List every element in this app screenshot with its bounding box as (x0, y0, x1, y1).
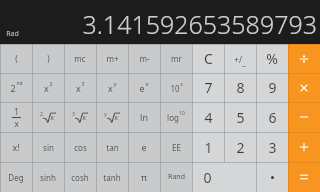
staticText: 9 (268, 78, 277, 97)
staticText: y (104, 111, 107, 118)
staticText: m- (139, 53, 150, 64)
button[interactable]: 2 (224, 132, 256, 162)
staticText: 10 (179, 110, 185, 117)
button[interactable]: y (96, 102, 128, 132)
staticText: x (44, 82, 49, 94)
button[interactable]: tan (96, 132, 128, 162)
button[interactable]: 3 (256, 132, 288, 162)
button[interactable]: e (128, 73, 160, 102)
staticText: cosh (71, 172, 89, 183)
staticText: sin (43, 142, 54, 153)
button[interactable]: sin (32, 132, 64, 162)
button[interactable]: m- (128, 44, 160, 73)
staticText: x! (12, 141, 20, 153)
staticText: sinh (40, 172, 56, 183)
staticText: 3.141592653589793 (82, 7, 317, 41)
staticText: y (113, 80, 117, 88)
button[interactable]: 2 (32, 102, 64, 132)
staticText: Deg (8, 172, 24, 183)
button[interactable]: Equals (288, 162, 320, 192)
button[interactable]: 1 (0, 102, 32, 132)
button[interactable]: ) (32, 44, 64, 73)
staticText: 8 (236, 78, 245, 97)
staticText: 1 (204, 138, 213, 157)
staticText: ( (15, 53, 18, 64)
button[interactable]: cosh (64, 162, 96, 192)
staticText: 2 (236, 138, 245, 157)
staticText: 2 (49, 80, 53, 88)
button[interactable]: mc (64, 44, 96, 73)
staticText: 3 (81, 80, 85, 88)
staticText: Rand (168, 172, 185, 182)
staticText: π (141, 171, 147, 183)
staticText: 0 (203, 168, 212, 187)
button[interactable]: 9 (256, 73, 288, 102)
button[interactable]: ln (128, 102, 160, 132)
button[interactable]: Subtract (288, 102, 320, 132)
staticText: C (204, 49, 213, 68)
button[interactable]: Decimal point (256, 162, 288, 192)
button[interactable]: 0 (192, 162, 256, 192)
button[interactable]: Multiply (288, 73, 320, 102)
staticText: x (114, 113, 118, 123)
staticText: nd (16, 80, 23, 87)
button[interactable]: 5 (224, 102, 256, 132)
staticText: mc (74, 53, 86, 64)
button[interactable]: Add (288, 132, 320, 162)
staticText: 3 (72, 111, 75, 118)
staticText: ) (47, 53, 50, 64)
button[interactable]: Divide (288, 44, 320, 73)
button[interactable]: C (192, 44, 224, 73)
staticText: x (145, 80, 149, 88)
button[interactable]: 3 (64, 102, 96, 132)
button[interactable]: 4 (192, 102, 224, 132)
button[interactable]: m+ (96, 44, 128, 73)
button[interactable]: + (224, 44, 256, 73)
button[interactable]: tanh (96, 162, 128, 192)
staticText: _ (242, 56, 246, 67)
button[interactable]: 1 (192, 132, 224, 162)
staticText: / (239, 54, 242, 65)
staticText: x (108, 82, 113, 94)
staticText: log (167, 112, 179, 123)
staticText: x (76, 82, 81, 94)
button[interactable]: % (256, 44, 288, 73)
staticText: 4 (204, 108, 213, 127)
staticText: m+ (106, 53, 119, 64)
button[interactable]: log (160, 102, 192, 132)
staticText: Rad (6, 29, 19, 39)
button[interactable]: EE (160, 132, 192, 162)
staticText: % (266, 49, 278, 68)
staticText: e (141, 141, 147, 153)
staticText: mr (171, 53, 182, 64)
staticText: x (50, 113, 54, 123)
staticText: tanh (103, 172, 121, 183)
button[interactable]: 2 (0, 73, 32, 102)
staticText: cos (74, 142, 87, 153)
button[interactable]: x! (0, 132, 32, 162)
button[interactable]: x (96, 73, 128, 102)
button[interactable]: x (64, 73, 96, 102)
button[interactable]: mr (160, 44, 192, 73)
staticText: 7 (204, 78, 213, 97)
button[interactable]: 8 (224, 73, 256, 102)
button[interactable]: 7 (192, 73, 224, 102)
button[interactable]: Deg (0, 162, 32, 192)
staticText: EE (172, 142, 181, 153)
button[interactable]: ( (0, 44, 32, 73)
button[interactable]: cos (64, 132, 96, 162)
staticText: 10 (170, 83, 180, 94)
staticText: e (139, 82, 145, 94)
button[interactable]: Rand (160, 162, 192, 192)
button[interactable]: e (128, 132, 160, 162)
button[interactable]: x (32, 73, 64, 102)
staticText: 3 (268, 138, 277, 157)
button[interactable]: 10 (160, 73, 192, 102)
staticText: x (82, 113, 86, 123)
button[interactable]: π (128, 162, 160, 192)
button[interactable]: 6 (256, 102, 288, 132)
staticText: ln (140, 111, 148, 123)
button[interactable]: sinh (32, 162, 64, 192)
staticText: tan (106, 142, 119, 153)
staticText: 2 (10, 82, 16, 94)
